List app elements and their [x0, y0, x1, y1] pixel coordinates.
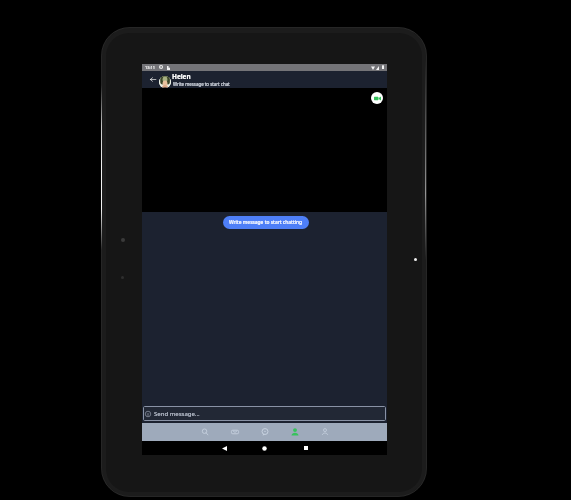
staticText: Write message to start chat: [173, 81, 230, 87]
button[interactable]: Contacts: [280, 423, 310, 441]
staticText: Send message...: [154, 410, 200, 418]
staticText: Write message to start chatting: [229, 219, 303, 226]
button[interactable]: Chats: [250, 423, 280, 441]
staticText: Helen: [172, 72, 191, 81]
button[interactable]: Recent apps: [299, 441, 313, 455]
button[interactable]: Mail: [220, 423, 250, 441]
button[interactable]: Search: [190, 423, 220, 441]
button[interactable]: Back: [217, 441, 231, 455]
button[interactable]: Write message to start chatting: [223, 216, 309, 229]
button[interactable]: Start video call: [371, 92, 383, 104]
button[interactable]: Profile: [310, 423, 340, 441]
button[interactable]: Send message...: [143, 406, 386, 421]
button[interactable]: Home: [257, 441, 271, 455]
button[interactable]: Back: [146, 72, 160, 86]
staticText: 13:11: [145, 65, 155, 70]
